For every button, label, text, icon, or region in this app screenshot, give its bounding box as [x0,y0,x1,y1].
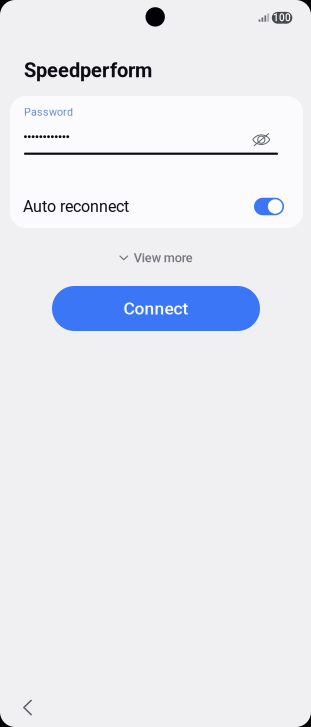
button[interactable]: View more [101,247,211,269]
staticText: Password [24,106,73,118]
staticText: Speedperform [24,59,152,82]
staticText: Connect [123,298,188,319]
button[interactable]: Show password [246,125,276,155]
button[interactable]: Connect [52,286,260,331]
staticText: 100 [273,12,291,24]
button[interactable]: Auto reconnect [254,198,284,215]
staticText: View more [134,251,193,265]
button[interactable]: Back [10,690,44,724]
staticText: Auto reconnect [23,197,129,216]
